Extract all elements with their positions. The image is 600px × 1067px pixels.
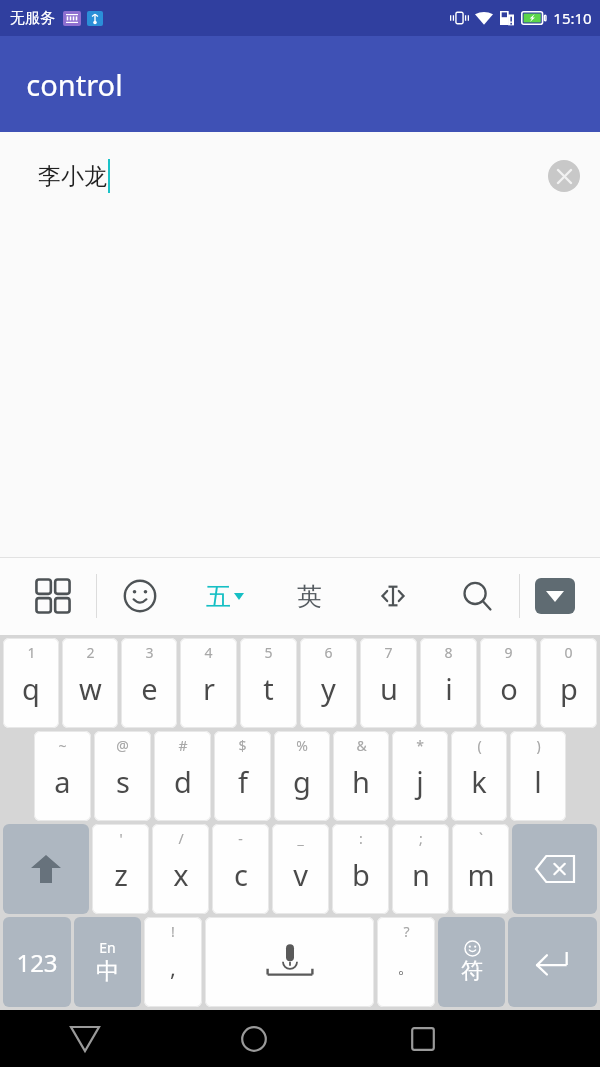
staticText: _ [297,829,304,848]
button[interactable]: Numbers [3,917,71,1007]
button[interactable]: ? [377,917,435,1007]
staticText: ; [419,829,423,848]
button[interactable]: Clear text [548,160,580,192]
staticText: 3 [145,643,154,662]
staticText: 8 [444,643,453,662]
staticText: * [416,736,424,755]
button[interactable]: Input method Wubi [182,557,267,635]
staticText: m [467,855,495,894]
button[interactable]: ) [510,731,566,821]
staticText: 15:10 [553,8,592,28]
button[interactable]: & [333,731,389,821]
staticText: k [471,762,487,801]
staticText: p [560,669,578,708]
button[interactable]: 7 [360,638,417,728]
staticText: c [234,855,248,894]
button[interactable]: Emoji [97,557,182,635]
button[interactable]: Shift [3,824,89,914]
staticText: l [534,762,542,801]
staticText: , [170,952,176,982]
staticText: 符 [461,957,483,985]
button[interactable]: 2 [62,638,118,728]
staticText: ( [477,736,482,755]
staticText: 无服务 [10,9,55,28]
staticText: 1 [27,643,36,662]
staticText: 6 [324,643,333,662]
staticText: : [359,829,363,848]
staticText: t [263,669,274,708]
button[interactable]: 4 [180,638,237,728]
button[interactable]: 3 [121,638,177,728]
button[interactable]: Hide keyboard [520,557,590,635]
staticText: h [352,762,370,801]
button[interactable]: 0 [540,638,597,728]
button[interactable]: 8 [420,638,477,728]
staticText: w [79,669,102,708]
button[interactable]: English input [267,557,351,635]
button[interactable]: * [392,731,448,821]
staticText: ~ [58,736,67,755]
button[interactable]: # [154,731,211,821]
staticText: e [141,669,158,708]
button[interactable]: 6 [300,638,357,728]
button[interactable]: 李小龙 [0,132,600,220]
staticText: v [293,855,308,894]
staticText: 9 [504,643,513,662]
button[interactable]: ( [451,731,507,821]
button[interactable]: Symbols [438,917,505,1007]
button[interactable]: Home [169,1010,338,1067]
button[interactable]: ' [92,824,149,914]
button[interactable]: Keyboard layouts [10,557,96,635]
staticText: z [114,855,128,894]
button[interactable]: 1 [3,638,59,728]
button[interactable]: ; [392,824,449,914]
staticText: u [380,669,398,708]
button[interactable]: Move cursor [351,557,435,635]
button[interactable]: Back [0,1010,169,1067]
button[interactable]: / [152,824,209,914]
staticText: o [500,669,518,708]
button[interactable]: - [212,824,269,914]
staticText: s [116,762,130,801]
button[interactable]: : [332,824,389,914]
staticText: ? [403,922,410,941]
staticText: i [445,669,453,708]
button[interactable]: Switch language [74,917,141,1007]
button[interactable]: % [274,731,330,821]
button[interactable]: Enter [508,917,597,1007]
button[interactable]: Backspace [512,824,597,914]
button[interactable]: 5 [240,638,297,728]
staticText: 123 [16,946,58,979]
button[interactable]: @ [94,731,151,821]
staticText: 李小龙 [38,162,107,191]
button[interactable]: _ [272,824,329,914]
staticText: 5 [264,643,273,662]
staticText: En [99,938,116,957]
staticText: control [26,65,123,104]
button[interactable]: Recent apps [338,1010,507,1067]
staticText: ` [479,829,483,848]
staticText: ! [171,922,175,941]
staticText: 4 [204,643,213,662]
button[interactable]: Space [205,917,374,1007]
button[interactable]: $ [214,731,271,821]
staticText: 中 [96,957,119,986]
staticText: @ [116,736,129,755]
staticText: - [238,829,243,848]
staticText: $ [238,736,247,755]
button[interactable]: control [0,36,600,132]
staticText: 0 [564,643,573,662]
staticText: r [203,669,215,708]
button[interactable]: Search [435,557,519,635]
button[interactable]: ~ [34,731,91,821]
staticText: x [173,855,189,894]
staticText: y [321,669,336,708]
staticText: 7 [384,643,393,662]
staticText: ) [536,736,541,755]
button[interactable]: ` [452,824,509,914]
button[interactable]: ! [144,917,202,1007]
staticText: ' [119,829,123,848]
staticText: f [238,762,248,801]
button[interactable]: 9 [480,638,537,728]
staticText: % [296,736,308,755]
